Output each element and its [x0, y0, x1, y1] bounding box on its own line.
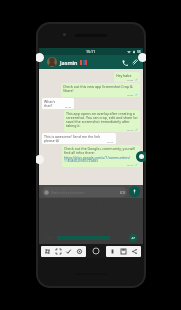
button[interactable]: Jasmin — [60, 59, 78, 66]
button[interactable]: Crop handle — [136, 151, 146, 162]
button[interactable]: Enter — [129, 234, 137, 242]
staticText: 15:11 — [86, 49, 96, 54]
button[interactable]: What's that? — [42, 98, 74, 109]
staticText: Nachricht schreiben — [51, 190, 84, 195]
staticText: 15:09 — [127, 93, 134, 96]
button[interactable]: Hey babe — [114, 72, 140, 82]
staticText: This is awesome! Send me the link please… — [44, 134, 106, 143]
button[interactable]: This app opens an overlay after creating… — [64, 110, 140, 132]
button[interactable]: Check out the Google+ community, you wil… — [62, 145, 140, 167]
button[interactable]: Attach — [130, 57, 141, 68]
button[interactable]: This is awesome! Send me the link please… — [42, 133, 116, 144]
button[interactable]: Call — [119, 57, 130, 68]
button[interactable]: Save — [119, 247, 128, 256]
button[interactable]: Share — [130, 247, 139, 256]
button[interactable]: Settings — [75, 247, 84, 256]
staticText: Check out the Google+ community, you wil… — [64, 146, 138, 155]
staticText: What's that? — [44, 99, 64, 108]
button[interactable]: Crop — [43, 247, 52, 256]
button[interactable]: Record voice message — [129, 186, 140, 197]
button[interactable]: Crop handle — [36, 53, 44, 62]
button[interactable]: Nachricht schreiben — [42, 187, 127, 197]
button[interactable]: Crop handle — [36, 155, 44, 164]
button[interactable]: Crop handle — [138, 53, 146, 62]
staticText: 98 — [137, 50, 141, 54]
button[interactable]: Contact photo — [47, 57, 57, 67]
button[interactable]: https://plus.google.com/u/1/communities/… — [64, 155, 138, 163]
staticText: 15:10 — [65, 105, 72, 108]
button[interactable]: Capture — [92, 247, 100, 255]
other: Camera — [120, 190, 125, 195]
staticText: This app opens an overlay after creating… — [66, 111, 138, 128]
button[interactable]: Check out this new app Screenshot Crop &… — [61, 83, 140, 97]
staticText: Hey babe — [116, 73, 132, 78]
staticText: Check out this new app Screenshot Crop &… — [63, 84, 138, 93]
staticText: 15:09 — [127, 78, 134, 81]
button[interactable]: Confirm — [64, 247, 73, 256]
button[interactable]: Delete — [108, 247, 117, 256]
button[interactable]: Expand — [54, 247, 63, 256]
